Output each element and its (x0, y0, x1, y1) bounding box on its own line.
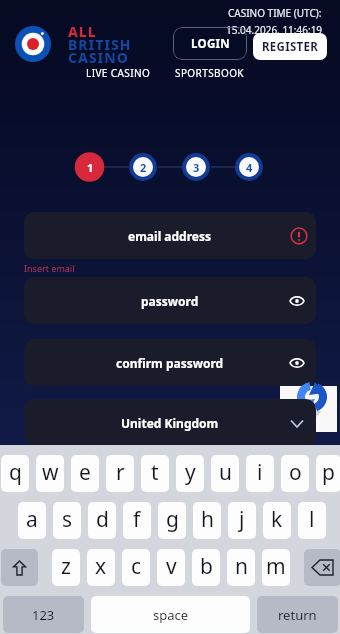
button[interactable]: p (316, 455, 340, 492)
staticText: CASINO TIME (UTC): (228, 6, 322, 20)
button[interactable]: w (36, 455, 64, 492)
staticText: LIVE CASINO (86, 66, 151, 80)
button[interactable]: k (263, 502, 291, 539)
staticText: m (266, 552, 286, 581)
staticText: SPORTSBOOK (175, 66, 244, 80)
button[interactable]: REGISTER (253, 33, 327, 60)
staticText: 123 (32, 606, 55, 624)
staticText: h (201, 505, 214, 534)
button[interactable]: n (227, 549, 255, 586)
button[interactable]: x (87, 549, 115, 586)
button[interactable]: s (53, 502, 81, 539)
staticText: d (96, 505, 109, 534)
staticText: u (219, 458, 232, 487)
staticText: w (42, 458, 59, 487)
staticText: o (289, 458, 302, 487)
staticText: c (131, 552, 142, 581)
staticText: 2 (140, 160, 147, 175)
button[interactable]: LOGIN (173, 27, 247, 60)
button[interactable]: LIVE CASINO (86, 66, 151, 80)
button[interactable]: l (298, 502, 326, 539)
button[interactable]: u (211, 455, 239, 492)
button[interactable]: g (158, 502, 186, 539)
button[interactable]: SPORTSBOOK (175, 66, 244, 80)
staticText: n (235, 552, 248, 581)
staticText: s (62, 505, 73, 534)
staticText: k (271, 505, 283, 534)
button[interactable]: r (106, 455, 134, 492)
button[interactable]: password (24, 277, 316, 324)
button[interactable]: a (18, 502, 46, 539)
staticText: i (257, 458, 263, 487)
staticText: 1 (87, 160, 94, 175)
button[interactable]: United Kingdom (24, 399, 316, 446)
staticText: g (166, 505, 179, 534)
button[interactable]: confirm password (24, 339, 316, 386)
staticText: United Kingdom (121, 415, 219, 431)
staticText: LOGIN (191, 36, 230, 52)
button[interactable]: y (176, 455, 204, 492)
button[interactable]: m (262, 549, 290, 586)
button[interactable]: c (122, 549, 150, 586)
staticText: space (153, 606, 189, 624)
staticText: ALL BRITISH CASINO (68, 22, 132, 67)
staticText: y (185, 458, 196, 487)
staticText: a (26, 505, 38, 534)
button[interactable]: o (281, 455, 309, 492)
staticText: f (133, 505, 141, 534)
staticText: e (79, 458, 91, 487)
button[interactable]: email address (24, 212, 316, 259)
staticText: password (141, 293, 199, 309)
button[interactable]: f (123, 502, 151, 539)
button[interactable]: Translate (280, 386, 337, 432)
button[interactable]: Shift (1, 549, 38, 586)
staticText: 4 (246, 160, 253, 175)
staticText: v (166, 552, 177, 581)
staticText: 3 (193, 160, 200, 175)
staticText: b (200, 552, 213, 581)
staticText: r (116, 458, 125, 487)
button[interactable]: h (193, 502, 221, 539)
button[interactable]: d (88, 502, 116, 539)
staticText: l (309, 505, 315, 534)
button[interactable]: e (71, 455, 99, 492)
staticText: x (95, 552, 107, 581)
staticText: t (151, 458, 159, 487)
staticText: return (278, 606, 317, 624)
staticText: q (9, 458, 22, 487)
staticText: Insert email (24, 262, 75, 274)
button[interactable]: q (1, 455, 29, 492)
staticText: REGISTER (262, 39, 319, 55)
button[interactable]: z (52, 549, 80, 586)
button[interactable]: j (228, 502, 256, 539)
button[interactable]: v (157, 549, 185, 586)
button[interactable]: b (192, 549, 220, 586)
button[interactable]: t (141, 455, 169, 492)
staticText: 15.04.2026. 11:46:19 (226, 23, 323, 37)
button[interactable]: i (246, 455, 274, 492)
button[interactable]: Backspace (304, 549, 340, 586)
staticText: z (61, 552, 71, 581)
button[interactable]: return (257, 596, 338, 633)
button[interactable]: 123 (3, 596, 84, 633)
staticText: j (239, 505, 245, 534)
staticText: p (322, 458, 335, 487)
button[interactable]: space (91, 596, 250, 633)
staticText: email address (128, 228, 212, 244)
staticText: confirm password (116, 355, 224, 371)
